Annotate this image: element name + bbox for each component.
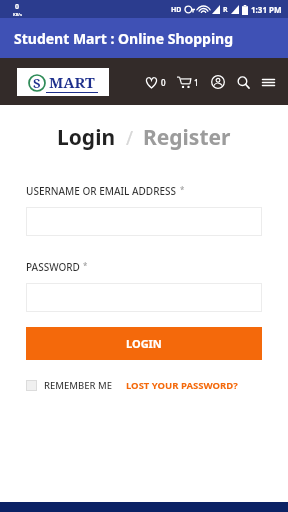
staticText: MART: [49, 72, 95, 92]
staticText: PASSWORD: [26, 260, 80, 274]
staticText: 0: [15, 2, 20, 12]
staticText: 1: [194, 77, 199, 88]
button[interactable]: Cart: [175, 69, 201, 95]
staticText: S: [33, 74, 41, 92]
staticText: 1:31 PM: [251, 4, 282, 15]
staticText: USERNAME OR EMAIL ADDRESS: [26, 184, 177, 198]
button[interactable]: Register: [143, 123, 231, 152]
staticText: /: [116, 125, 143, 151]
button[interactable]: LOST YOUR PASSWORD?: [126, 379, 238, 392]
button[interactable]: Account: [207, 71, 229, 93]
button[interactable]: Login: [57, 123, 116, 152]
button[interactable]: REMEMBER ME: [26, 379, 113, 392]
staticText: Student Mart : Online Shopping: [14, 29, 234, 48]
staticText: REMEMBER ME: [44, 379, 113, 392]
staticText: LOGIN: [126, 336, 162, 351]
staticText: *: [180, 184, 185, 195]
staticText: HD: [171, 5, 182, 15]
button[interactable]: [26, 207, 262, 236]
staticText: 0: [161, 77, 166, 88]
staticText: KB/s: [13, 12, 22, 17]
button[interactable]: Search: [233, 72, 254, 93]
staticText: R: [223, 5, 228, 15]
button[interactable]: [26, 283, 262, 312]
button[interactable]: Menu: [258, 72, 279, 93]
button[interactable]: Wishlist: [143, 70, 168, 95]
button[interactable]: LOGIN: [26, 327, 262, 360]
staticText: *: [83, 260, 88, 271]
button[interactable]: Student Mart home: [17, 68, 109, 96]
